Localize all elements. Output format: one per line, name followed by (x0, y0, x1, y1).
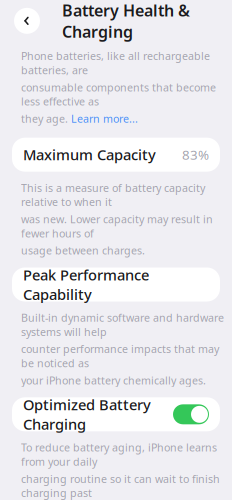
staticText: Phone batteries, like all rechargeable b… (21, 49, 210, 77)
staticText: was new. Lower capacity may result in fe… (21, 212, 213, 240)
staticText: your iPhone battery chemically ages. (21, 373, 206, 387)
button[interactable]: Optimized Battery Charging (12, 397, 220, 431)
staticText: Built-in dynamic software and hardware s… (21, 310, 224, 339)
staticText: consumable components that become less e… (21, 80, 216, 108)
staticText: counter performance impacts that may be … (21, 342, 219, 370)
staticText: 83% (182, 146, 209, 163)
staticText: Peak Performance Capability (23, 265, 149, 304)
staticText: Maximum Capacity (23, 145, 156, 164)
button[interactable]: Peak Performance Capability (12, 267, 220, 301)
staticText: they age. (21, 111, 71, 126)
staticText: usage between charges. (21, 243, 145, 257)
staticText: Learn more... (71, 111, 138, 126)
staticText: charging routine so it can wait to finis… (21, 472, 220, 500)
staticText: Battery Health & Charging (62, 0, 190, 42)
button[interactable]: Back (12, 6, 42, 36)
button[interactable]: Maximum Capacity (12, 138, 220, 172)
button[interactable]: Learn more... (71, 111, 138, 126)
staticText: To reduce battery aging, iPhone learns f… (21, 440, 217, 469)
staticText: Optimized Battery Charging (23, 395, 151, 434)
staticText: This is a measure of battery capacity re… (21, 181, 205, 209)
